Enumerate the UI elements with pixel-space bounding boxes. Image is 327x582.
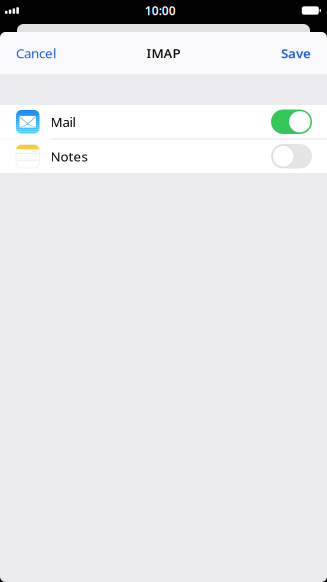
button[interactable]: Mail <box>0 105 327 138</box>
button[interactable]: Cancel <box>0 32 72 74</box>
staticText: Notes <box>50 147 87 165</box>
staticText: IMAP <box>146 44 180 62</box>
button[interactable]: Notes <box>0 139 327 173</box>
staticText: Mail <box>50 113 75 131</box>
button[interactable]: Save <box>265 32 327 74</box>
staticText: Save <box>281 44 311 62</box>
staticText: 10:00 <box>145 2 176 18</box>
staticText: Cancel <box>16 44 56 62</box>
